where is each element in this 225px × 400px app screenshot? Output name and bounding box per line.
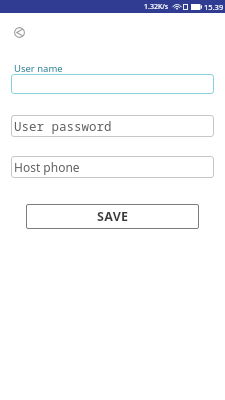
staticText: 15.39 bbox=[204, 2, 224, 12]
staticText: Host phone bbox=[14, 159, 80, 175]
button[interactable]: Host phone bbox=[11, 156, 214, 178]
button[interactable]: Back bbox=[9, 22, 30, 43]
button[interactable]: User password bbox=[11, 115, 214, 137]
staticText: User name bbox=[14, 62, 63, 75]
button[interactable]: SAVE bbox=[26, 204, 199, 229]
button[interactable] bbox=[11, 74, 214, 94]
staticText: 1.32K/s bbox=[144, 2, 169, 12]
staticText: SAVE bbox=[97, 208, 129, 225]
staticText: User password bbox=[14, 118, 112, 135]
